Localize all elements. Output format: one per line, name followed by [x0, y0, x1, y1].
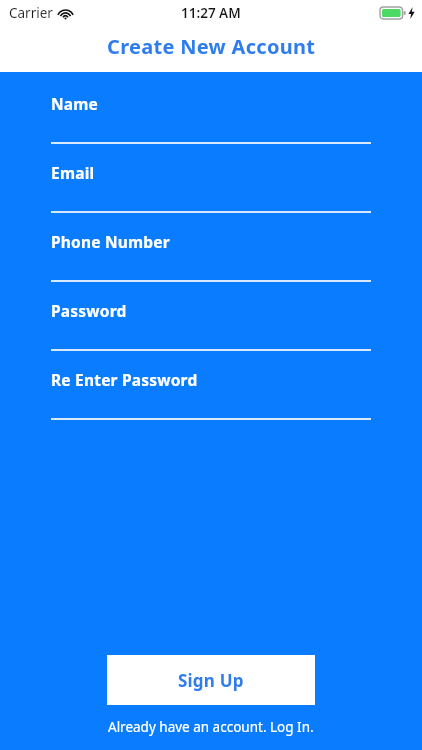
other: Battery charging [380, 7, 406, 19]
button[interactable]: Password [51, 300, 371, 351]
staticText: 11:27 AM [181, 4, 241, 22]
staticText: Sign Up [178, 669, 244, 692]
button[interactable]: Name [51, 93, 371, 144]
staticText: Carrier [9, 4, 53, 22]
button[interactable]: Re Enter Password [51, 369, 371, 420]
staticText: Password [51, 300, 127, 321]
staticText: Create New Account [107, 33, 316, 60]
button[interactable]: Sign Up [107, 655, 315, 705]
staticText: Re Enter Password [51, 369, 198, 390]
staticText: Name [51, 93, 99, 114]
staticText: Already have an account. Log In. [108, 718, 314, 736]
staticText: Email [51, 162, 95, 183]
button[interactable]: Phone Number [51, 231, 371, 282]
button[interactable]: Email [51, 162, 371, 213]
other: Wi-Fi signal [58, 8, 73, 19]
staticText: Phone Number [51, 231, 170, 252]
button[interactable]: Already have an account. Log In. [102, 716, 320, 738]
